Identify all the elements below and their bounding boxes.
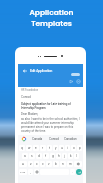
staticText: , [30, 170, 31, 174]
staticText: g [52, 154, 54, 158]
staticText: z [30, 162, 32, 166]
button[interactable]: q [19, 145, 25, 151]
button[interactable]: Canada [31, 137, 44, 141]
button[interactable]: z [28, 161, 33, 167]
staticText: HR Foundation [21, 89, 39, 92]
button[interactable]: s [29, 153, 35, 159]
staticText: Templates [31, 18, 72, 28]
other: Back [23, 69, 27, 73]
button[interactable]: k [68, 153, 73, 159]
staticText: s [31, 154, 33, 158]
staticText: Conrad [49, 137, 59, 141]
staticText: u [61, 146, 63, 150]
button[interactable]: l [74, 153, 79, 159]
button[interactable]: a [22, 153, 28, 159]
button[interactable]: b [53, 161, 59, 167]
button[interactable]: Backspace [74, 161, 82, 167]
staticText: a [24, 154, 26, 158]
button[interactable]: p [77, 145, 82, 151]
button[interactable]: o [71, 145, 76, 151]
staticText: ?123 [20, 171, 26, 174]
staticText: x [36, 162, 38, 166]
button[interactable]: r [40, 145, 46, 151]
button[interactable]: Conrad [48, 137, 60, 141]
staticText: Canadian [64, 137, 77, 141]
button[interactable]: f [43, 153, 49, 159]
staticText: m [69, 162, 72, 166]
staticText: p [79, 146, 81, 150]
staticText: Application [29, 7, 74, 17]
staticText: y [55, 146, 57, 150]
button[interactable]: g [50, 153, 55, 159]
staticText: as also I want to be in the school autho… [21, 117, 80, 133]
button[interactable]: w [26, 145, 32, 151]
button[interactable]: n [60, 161, 66, 167]
button[interactable]: Shift [19, 161, 27, 167]
staticText: k [70, 154, 72, 158]
staticText: . [72, 170, 73, 174]
staticText: t [49, 146, 51, 150]
button[interactable]: Back [18, 64, 83, 87]
button[interactable]: u [59, 145, 64, 151]
staticText: Dear Madam, [21, 112, 39, 115]
staticText: e [35, 146, 37, 150]
button[interactable]: Attach file [69, 79, 74, 84]
button[interactable]: d [36, 153, 42, 159]
button[interactable]: Emoji [34, 169, 39, 175]
staticText: v [48, 162, 50, 166]
button[interactable]: c [40, 161, 45, 167]
button[interactable]: Google search [22, 137, 26, 141]
staticText: Edit Application [30, 69, 53, 73]
staticText: Subject: application for Late training o… [21, 102, 80, 110]
button[interactable]: More options [76, 79, 81, 84]
button[interactable]: Enter [76, 169, 82, 175]
staticText: c [42, 162, 44, 166]
button[interactable]: m [67, 161, 73, 167]
staticText: n [62, 162, 64, 166]
staticText: o [73, 146, 75, 150]
staticText: q [21, 146, 23, 150]
button[interactable]: x [34, 161, 39, 167]
button[interactable]: t [47, 145, 52, 151]
staticText: j [64, 154, 65, 158]
button[interactable]: i [65, 145, 70, 151]
staticText: i [67, 146, 68, 150]
button[interactable]: h [56, 153, 61, 159]
button[interactable]: e [33, 145, 39, 151]
button[interactable]: y [53, 145, 58, 151]
button[interactable]: Send [71, 73, 80, 76]
staticText: d [38, 154, 40, 158]
staticText: Conrad [21, 95, 31, 99]
button[interactable]: ?123 [19, 169, 27, 175]
button[interactable]: , [28, 169, 33, 175]
button[interactable]: v [46, 161, 52, 167]
button[interactable]: Canadian [63, 137, 78, 141]
staticText: Canada [32, 137, 43, 141]
staticText: f [45, 154, 47, 158]
staticText: b [55, 162, 57, 166]
staticText: r [42, 146, 44, 150]
staticText: l [76, 154, 77, 158]
staticText: w [28, 146, 31, 150]
staticText: h [58, 154, 60, 158]
button[interactable]: j [62, 153, 67, 159]
